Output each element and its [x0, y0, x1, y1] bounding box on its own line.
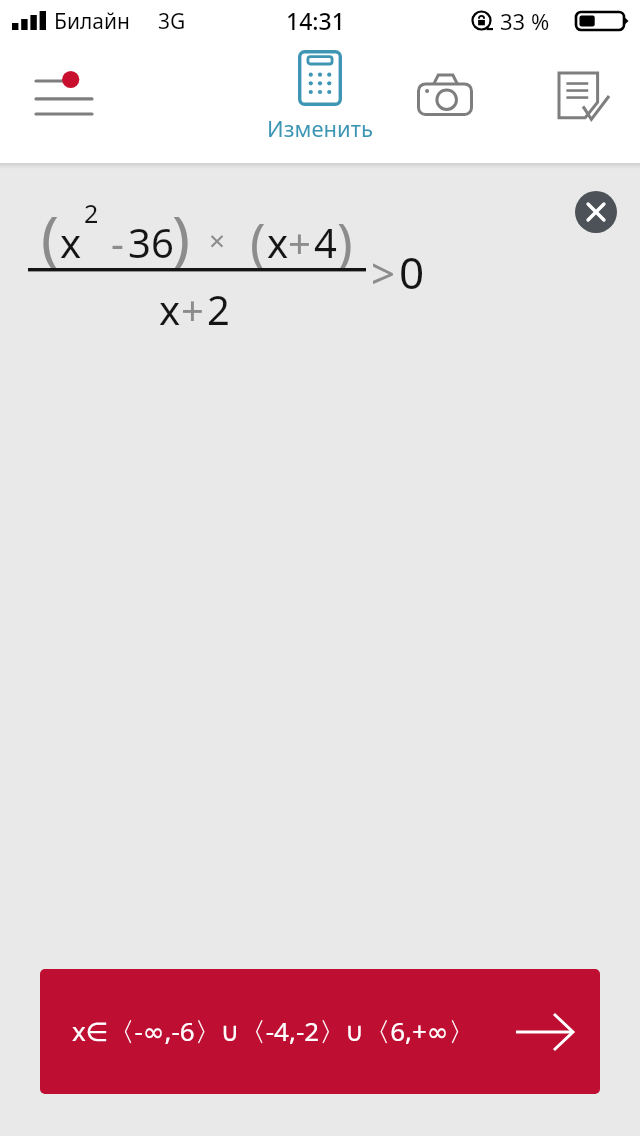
staticText: x: [267, 215, 289, 269]
staticText: (: [250, 206, 266, 277]
staticText: x: [159, 282, 181, 336]
staticText: x∈〈-∞,-6〉∪〈-4,-2〉∪〈6,+∞〉: [72, 1013, 475, 1049]
staticText: -: [111, 215, 124, 269]
staticText: ×: [209, 221, 226, 259]
staticText: x: [60, 215, 82, 269]
staticText: 3G: [158, 7, 186, 36]
staticText: (: [41, 196, 59, 278]
staticText: >: [371, 244, 396, 301]
button[interactable]: Меню: [18, 62, 110, 124]
staticText: +: [288, 215, 311, 269]
staticText: 0: [399, 242, 425, 302]
staticText: 14:31: [286, 5, 345, 36]
button[interactable]: Изменить: [248, 50, 392, 143]
staticText: Изменить: [248, 113, 392, 143]
staticText: 36: [128, 215, 174, 269]
button[interactable]: Камера: [400, 62, 490, 124]
button[interactable]: x∈〈-∞,-6〉∪〈-4,-2〉∪〈6,+∞〉: [40, 969, 600, 1094]
staticText: +: [181, 282, 204, 336]
staticText: 2: [207, 282, 230, 336]
staticText: ): [337, 206, 353, 277]
button[interactable]: Решения: [538, 60, 628, 126]
staticText: 4: [314, 215, 337, 269]
staticText: ): [172, 196, 190, 278]
staticText: 2: [84, 196, 99, 230]
staticText: Билайн: [54, 7, 130, 36]
button[interactable]: Закрыть: [575, 191, 617, 233]
staticText: 33 %: [500, 6, 550, 36]
